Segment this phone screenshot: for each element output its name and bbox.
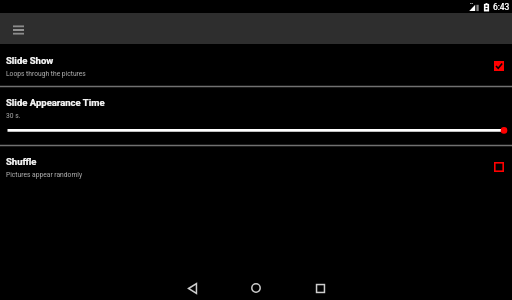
button[interactable]: Slide Show bbox=[0, 44, 512, 86]
staticText: Loops through the pictures bbox=[6, 70, 86, 78]
staticText: Shuffle bbox=[6, 156, 37, 167]
button[interactable]: Recent apps bbox=[297, 276, 343, 300]
staticText: 30 s. bbox=[6, 112, 21, 120]
button[interactable]: Open navigation menu bbox=[8, 20, 28, 40]
button[interactable]: Disabled bbox=[489, 157, 509, 177]
button[interactable]: Slide Appearance Time bbox=[0, 87, 512, 145]
staticText: 6:43 bbox=[493, 2, 510, 12]
staticText: Pictures appear randomly bbox=[6, 171, 83, 179]
button[interactable]: Shuffle bbox=[0, 146, 512, 188]
staticText: Slide Show bbox=[6, 55, 54, 66]
staticText: Slide Appearance Time bbox=[6, 97, 105, 108]
button[interactable]: Home bbox=[233, 276, 279, 300]
button[interactable]: Enabled bbox=[489, 56, 509, 76]
button[interactable]: Back bbox=[169, 276, 215, 300]
